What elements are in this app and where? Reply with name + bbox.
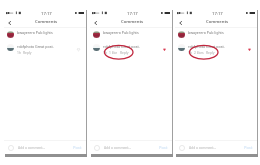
button[interactable]: Post: [243, 144, 254, 151]
button[interactable]: Back: [176, 18, 185, 27]
staticText: robfphoto Great post.: [17, 44, 54, 49]
staticText: bwayerero Pub lights: [17, 30, 53, 35]
staticText: 17:17: [127, 11, 138, 17]
button[interactable]: Back: [5, 18, 14, 27]
staticText: 17:17: [212, 11, 223, 17]
staticText: bwayerero Pub lights: [103, 30, 139, 35]
staticText: Post: [244, 145, 253, 150]
staticText: Post: [159, 145, 168, 150]
button[interactable]: Like: [246, 46, 253, 53]
staticText: Add a comment...: [18, 145, 46, 149]
staticText: Comments: [206, 19, 229, 25]
button[interactable]: Post: [72, 144, 83, 151]
button[interactable]: Back: [91, 18, 100, 27]
staticText: 1h: [17, 50, 21, 54]
staticText: 1h: [103, 50, 107, 54]
staticText: 17:17: [41, 11, 52, 17]
button[interactable]: Like: [75, 46, 82, 53]
staticText: Comments: [35, 19, 58, 25]
staticText: Add a comment...: [189, 145, 217, 149]
staticText: bwayerero Pub lights: [188, 30, 224, 35]
staticText: 1 like: [109, 50, 118, 54]
staticText: 2 likes: [194, 50, 204, 54]
staticText: Reply: [206, 50, 215, 54]
button[interactable]: Post: [158, 144, 169, 151]
staticText: 1h: [188, 50, 192, 54]
staticText: Comments: [121, 19, 144, 25]
staticText: robfphoto Great post.: [188, 44, 225, 49]
staticText: Post: [73, 145, 82, 150]
staticText: Reply: [23, 50, 32, 54]
staticText: Add a comment...: [104, 145, 132, 149]
staticText: robfphoto Great post.: [103, 44, 140, 49]
staticText: Reply: [120, 50, 129, 54]
button[interactable]: Like: [161, 46, 168, 53]
